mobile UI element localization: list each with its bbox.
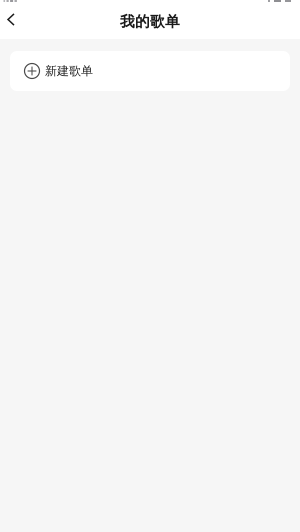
staticText: 新建歌单: [45, 64, 93, 78]
button[interactable]: 返回: [0, 9, 22, 35]
staticText: 我的歌单: [120, 12, 180, 30]
button[interactable]: 新建歌单: [10, 51, 290, 91]
